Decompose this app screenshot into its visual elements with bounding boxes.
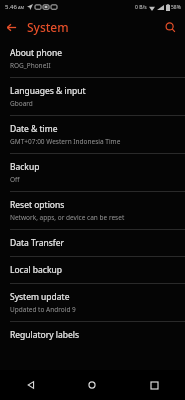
staticText: Regulatory labels (10, 329, 80, 341)
button[interactable]: About phone (0, 40, 185, 77)
staticText: System (27, 19, 69, 35)
staticText: System update (10, 291, 70, 303)
staticText: 0 B/s (135, 4, 147, 11)
button[interactable]: Home (61, 370, 123, 400)
button[interactable]: Regulatory labels (0, 322, 185, 348)
button[interactable]: System update (0, 284, 185, 321)
staticText: Date & time (10, 123, 58, 135)
staticText: ROG_PhoneII (10, 61, 51, 70)
button[interactable]: Local backup (0, 257, 185, 283)
staticText: Languages & input (10, 85, 86, 97)
button[interactable]: Reset options (0, 192, 185, 229)
staticText: Updated to Android 9 (10, 305, 76, 314)
button[interactable]: Back (0, 370, 61, 400)
button[interactable]: Data Transfer (0, 230, 185, 256)
staticText: About phone (10, 47, 63, 59)
staticText: Network, apps, or device can be reset (10, 213, 125, 222)
staticText: Gboard (10, 99, 33, 108)
staticText: GMT+07:00 Western Indonesia Time (10, 137, 121, 146)
button[interactable]: Date & time (0, 116, 185, 153)
staticText: Data Transfer (10, 237, 64, 249)
button[interactable]: Recent apps (123, 370, 185, 400)
staticText: Off (10, 175, 20, 184)
button[interactable]: Backup (0, 154, 185, 191)
staticText: 5.46 (5, 3, 17, 11)
staticText: Reset options (10, 199, 65, 211)
button[interactable]: Languages & input (0, 78, 185, 115)
staticText: Local backup (10, 264, 62, 276)
button[interactable]: Search (159, 16, 181, 38)
staticText: 58% (171, 4, 181, 11)
staticText: AM (18, 5, 25, 10)
staticText: Backup (10, 161, 40, 173)
button[interactable]: Back (0, 16, 22, 38)
